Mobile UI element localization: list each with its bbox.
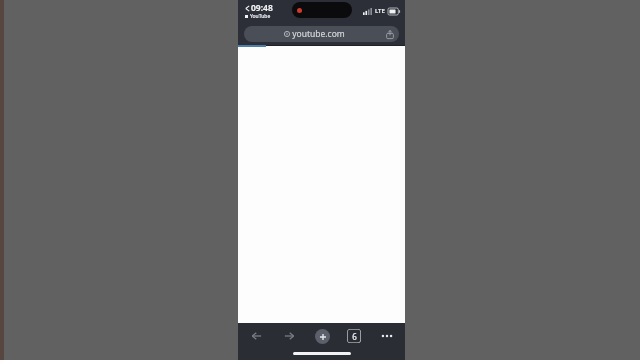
staticText: LTE — [375, 7, 385, 15]
staticText: 09:48 — [251, 2, 273, 14]
button[interactable]: More — [375, 324, 399, 348]
staticText: YouTube — [250, 13, 271, 20]
button[interactable]: youtube.com — [244, 26, 399, 42]
staticText: 6 — [352, 331, 357, 342]
button[interactable]: Forward — [277, 324, 301, 348]
staticText: youtube.com — [292, 28, 345, 40]
button[interactable]: New tab — [310, 324, 334, 348]
button[interactable]: Tabs — [342, 324, 366, 348]
button[interactable]: Share — [384, 29, 395, 40]
button[interactable]: Back — [244, 324, 268, 348]
